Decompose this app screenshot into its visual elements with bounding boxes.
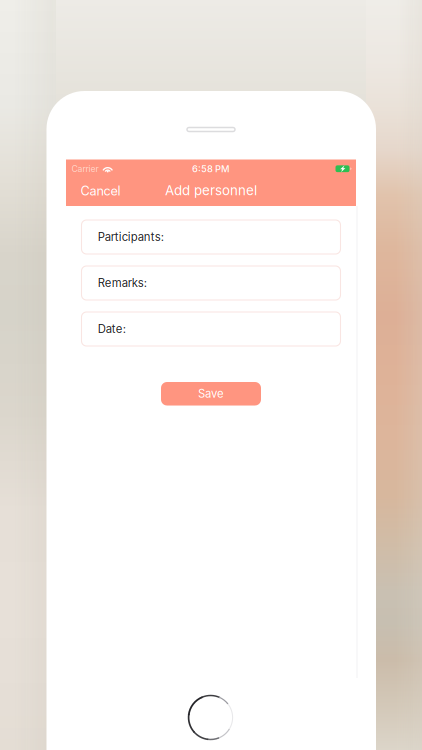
staticText: Participants: (98, 230, 164, 244)
button[interactable]: Cancel (72, 178, 128, 204)
staticText: Save (198, 387, 224, 401)
staticText: Add personnel (165, 182, 257, 198)
staticText: Carrier (71, 163, 98, 174)
staticText: Date: (98, 322, 126, 336)
staticText: 6:58 PM (192, 163, 230, 174)
staticText: Cancel (80, 183, 120, 199)
button[interactable]: Save (161, 382, 261, 405)
staticText: Remarks: (98, 276, 147, 290)
